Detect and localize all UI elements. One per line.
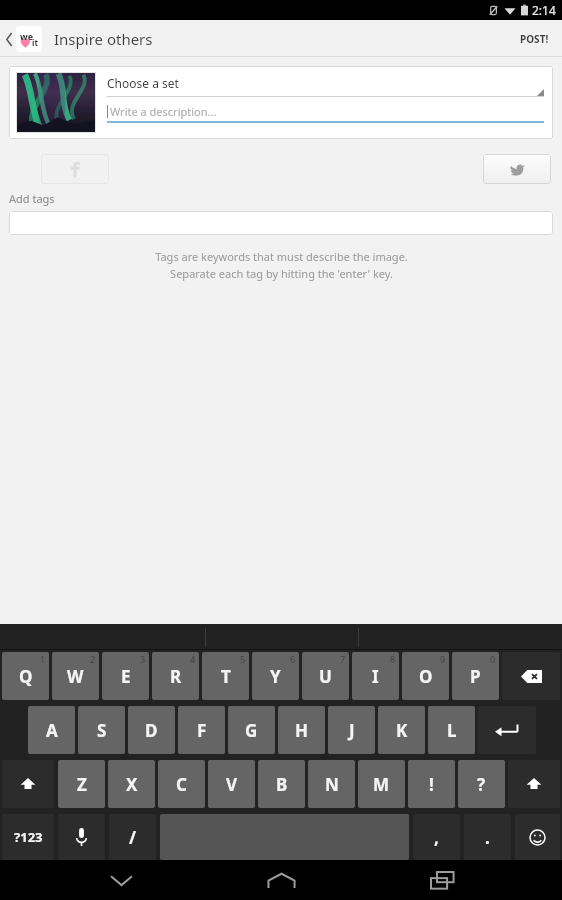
staticText: Choose a set — [107, 75, 179, 91]
button[interactable]: Share on Facebook — [41, 154, 109, 184]
button[interactable]: T — [202, 652, 249, 700]
button[interactable]: L — [428, 706, 475, 754]
staticText: P — [470, 665, 481, 688]
button[interactable]: V — [208, 760, 255, 808]
staticText: 7 — [340, 653, 346, 665]
button[interactable]: Add tags — [9, 211, 553, 235]
button[interactable]: Z — [58, 760, 105, 808]
staticText: 1 — [40, 653, 46, 665]
button[interactable]: B — [258, 760, 305, 808]
button[interactable]: Hide keyboard — [81, 860, 161, 900]
button[interactable]: Write a description... — [107, 102, 544, 123]
button[interactable]: Shift — [2, 760, 54, 808]
button[interactable]: O — [402, 652, 449, 700]
staticText: 9 — [440, 653, 446, 665]
button[interactable]: Y — [252, 652, 299, 700]
button[interactable]: X — [108, 760, 155, 808]
staticText: W — [67, 665, 84, 688]
staticText: Y — [270, 665, 281, 688]
button[interactable]: R — [152, 652, 199, 700]
button[interactable]: Emoji — [515, 814, 560, 860]
staticText: U — [319, 665, 332, 688]
button[interactable]: C — [158, 760, 205, 808]
button[interactable]: G — [228, 706, 275, 754]
button[interactable]: D — [128, 706, 175, 754]
staticText: Inspire others — [54, 29, 153, 49]
staticText: Write a description... — [110, 104, 217, 119]
staticText: 2:14 — [532, 2, 556, 18]
staticText: D — [145, 719, 158, 742]
button[interactable]: ? — [458, 760, 505, 808]
button[interactable]: Voice input — [58, 814, 105, 860]
staticText: / — [129, 826, 137, 849]
button[interactable]: Q — [2, 652, 49, 700]
button[interactable]: Recent apps — [402, 860, 482, 900]
button[interactable]: Backspace — [502, 652, 560, 700]
button[interactable]: I — [352, 652, 399, 700]
button[interactable]: J — [328, 706, 375, 754]
button[interactable]: N — [308, 760, 355, 808]
staticText: . — [485, 826, 490, 849]
staticText: G — [245, 719, 258, 742]
button[interactable]: P — [452, 652, 499, 700]
staticText: L — [447, 719, 457, 742]
staticText: V — [226, 773, 238, 796]
staticText: B — [276, 773, 288, 796]
staticText: T — [221, 665, 231, 688]
button[interactable]: ! — [408, 760, 455, 808]
staticText: X — [126, 773, 138, 796]
staticText: ?123 — [14, 828, 43, 846]
button[interactable]: E — [102, 652, 149, 700]
button[interactable]: Share on Twitter — [483, 154, 551, 184]
button[interactable]: POST! — [516, 25, 553, 53]
button[interactable]: A — [28, 706, 75, 754]
staticText: M — [373, 773, 390, 796]
staticText: Tags are keywords that must describe the… — [155, 249, 408, 264]
button[interactable]: . — [464, 814, 511, 860]
staticText: A — [46, 719, 58, 742]
button[interactable]: Home — [241, 860, 321, 900]
staticText: it — [32, 37, 38, 48]
button[interactable]: Back — [2, 23, 16, 55]
button[interactable]: H — [278, 706, 325, 754]
button[interactable]: F — [178, 706, 225, 754]
staticText: ! — [429, 773, 434, 796]
button[interactable]: U — [302, 652, 349, 700]
button[interactable]: , — [413, 814, 460, 860]
button[interactable]: M — [358, 760, 405, 808]
staticText: 8 — [390, 653, 396, 665]
staticText: 2 — [90, 653, 96, 665]
staticText: Add tags — [9, 191, 55, 206]
staticText: O — [419, 665, 433, 688]
staticText: 3 — [140, 653, 146, 665]
staticText: N — [325, 773, 339, 796]
staticText: R — [170, 665, 182, 688]
button[interactable]: K — [378, 706, 425, 754]
staticText: 4 — [190, 653, 196, 665]
button[interactable]: / — [109, 814, 156, 860]
staticText: POST! — [520, 32, 549, 46]
staticText: J — [349, 719, 355, 742]
staticText: E — [121, 665, 131, 688]
staticText: we — [20, 30, 34, 42]
button[interactable]: Selected photo — [16, 72, 96, 133]
button[interactable]: S — [78, 706, 125, 754]
staticText: ? — [477, 773, 486, 796]
staticText: F — [197, 719, 207, 742]
staticText: Q — [19, 665, 33, 688]
staticText: Separate each tag by hitting the 'enter'… — [170, 266, 393, 281]
staticText: Z — [77, 773, 87, 796]
button[interactable]: Shift — [508, 760, 560, 808]
staticText: C — [176, 773, 187, 796]
button[interactable]: W — [52, 652, 99, 700]
button[interactable]: ?123 — [2, 814, 54, 860]
button[interactable]: Choose a set — [107, 73, 544, 97]
staticText: 6 — [290, 653, 296, 665]
staticText: H — [295, 719, 309, 742]
staticText: 5 — [240, 653, 246, 665]
staticText: I — [372, 665, 379, 688]
button[interactable]: Enter — [478, 706, 536, 754]
button[interactable]: We Heart It — [16, 26, 42, 52]
staticText: , — [434, 826, 439, 849]
